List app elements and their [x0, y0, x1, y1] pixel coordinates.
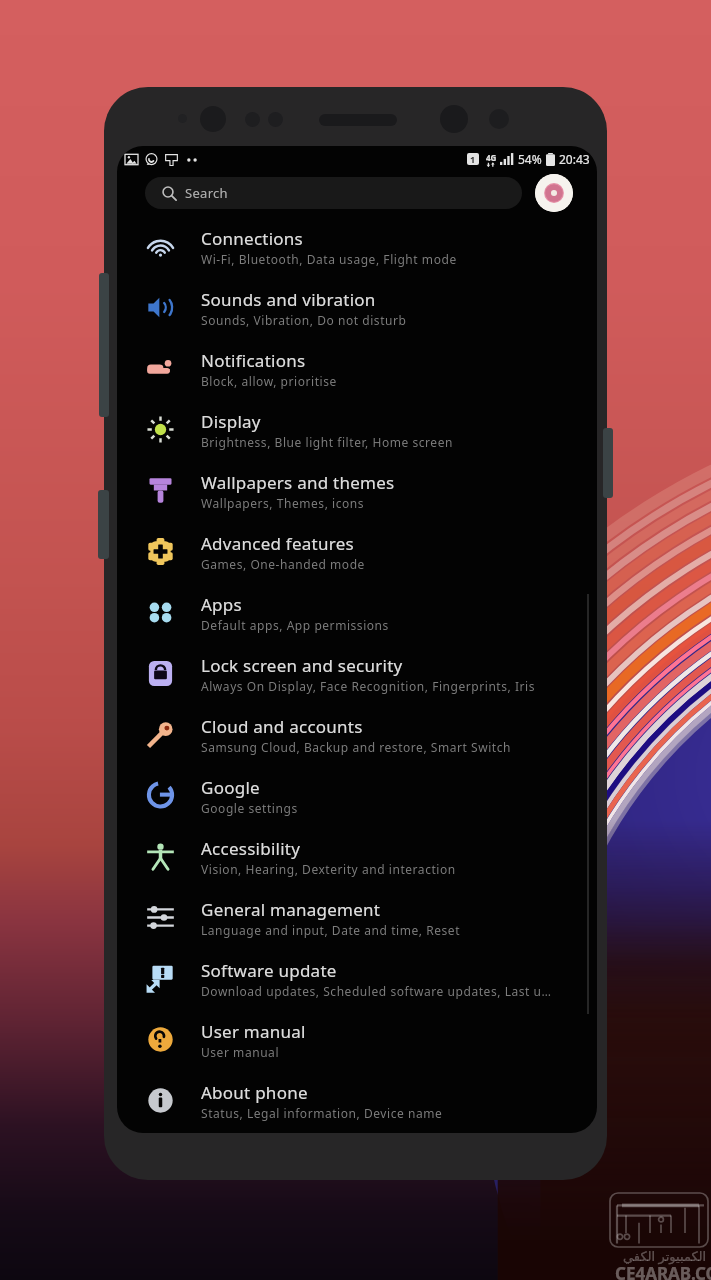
staticText: Status, Legal information, Device name [201, 1105, 443, 1121]
staticText: About phone [201, 1081, 308, 1104]
staticText: Apps [201, 593, 242, 616]
staticText: Vision, Hearing, Dexterity and interacti… [201, 861, 456, 877]
button[interactable]: Software update [117, 948, 597, 1009]
button[interactable]: Notifications [117, 338, 597, 399]
staticText: Sounds, Vibration, Do not disturb [201, 312, 407, 328]
staticText: Connections [201, 227, 303, 250]
staticText: Display [201, 410, 261, 433]
button[interactable]: Wallpapers and themes [117, 460, 597, 521]
button[interactable]: Profile [535, 174, 573, 212]
staticText: Accessibility [201, 837, 301, 860]
button[interactable]: User manual [117, 1009, 597, 1070]
staticText: Cloud and accounts [201, 715, 363, 738]
button[interactable]: Google [117, 765, 597, 826]
staticText: Samsung Cloud, Backup and restore, Smart… [201, 739, 512, 755]
staticText: Wallpapers and themes [201, 471, 395, 494]
button[interactable]: Apps [117, 582, 597, 643]
staticText: CE4ARAB.COM [615, 1262, 711, 1280]
staticText: General management [201, 898, 381, 921]
staticText: Search [185, 184, 228, 202]
button[interactable]: Connections [117, 216, 597, 277]
staticText: Default apps, App permissions [201, 617, 389, 633]
staticText: الكمبيوتر الكفي [623, 1247, 707, 1265]
staticText: User manual [201, 1044, 280, 1060]
button[interactable]: Sounds and vibration [117, 277, 597, 338]
staticText: Google [201, 776, 260, 799]
staticText: Wi-Fi, Bluetooth, Data usage, Flight mod… [201, 251, 457, 267]
staticText: 54% [518, 151, 542, 167]
staticText: Block, allow, prioritise [201, 373, 337, 389]
button[interactable]: About phone [117, 1070, 597, 1131]
button[interactable]: Lock screen and security [117, 643, 597, 704]
staticText: Always On Display, Face Recognition, Fin… [201, 678, 536, 694]
staticText: Lock screen and security [201, 654, 403, 677]
staticText: 20:43 [559, 151, 590, 167]
staticText: Wallpapers, Themes, icons [201, 495, 365, 511]
staticText: 1 [470, 153, 476, 165]
staticText: Brightness, Blue light filter, Home scre… [201, 434, 453, 450]
staticText: Advanced features [201, 532, 354, 555]
staticText: Download updates, Scheduled software upd… [201, 983, 552, 999]
staticText: User manual [201, 1020, 306, 1043]
button[interactable]: Advanced features [117, 521, 597, 582]
button[interactable]: Search [145, 177, 522, 209]
button[interactable]: Display [117, 399, 597, 460]
button[interactable]: Cloud and accounts [117, 704, 597, 765]
staticText: 4G [486, 152, 497, 163]
staticText: Language and input, Date and time, Reset [201, 922, 461, 938]
staticText: Software update [201, 959, 337, 982]
staticText: Notifications [201, 349, 306, 372]
staticText: Google settings [201, 800, 298, 816]
staticText: Games, One-handed mode [201, 556, 365, 572]
staticText: Sounds and vibration [201, 288, 376, 311]
button[interactable]: General management [117, 887, 597, 948]
button[interactable]: Accessibility [117, 826, 597, 887]
